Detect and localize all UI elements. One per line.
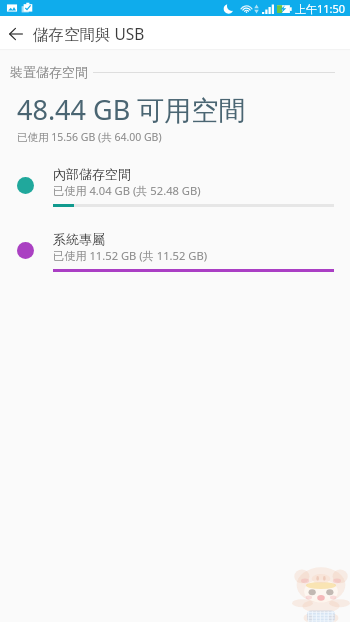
staticText: 系統專屬 (53, 231, 105, 247)
staticText: 已使用 4.04 GB (共 52.48 GB) (53, 183, 201, 198)
button[interactable]: 系統專屬 (0, 231, 350, 272)
staticText: 已使用 15.56 GB (共 64.00 GB) (17, 130, 162, 144)
staticText: 上午11:50 (295, 1, 346, 16)
staticText: 內部儲存空間 (53, 166, 131, 182)
staticText: 48.44 GB 可用空間 (17, 91, 246, 128)
staticText: 已使用 11.52 GB (共 11.52 GB) (53, 248, 208, 263)
button[interactable]: 內部儲存空間 (0, 166, 350, 207)
staticText: 裝置儲存空間 (10, 64, 88, 80)
staticText: 儲存空間與 USB (33, 23, 145, 44)
button[interactable]: Back (3, 21, 29, 47)
